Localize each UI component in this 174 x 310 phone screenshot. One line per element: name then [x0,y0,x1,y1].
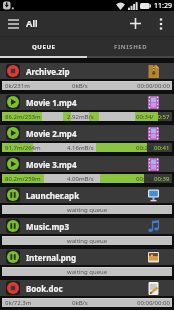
staticText: 86.2m/253m [5,113,41,121]
button[interactable]: Movie 1.mp4 [0,94,174,125]
staticText: FINISHED [114,43,148,51]
staticText: Launcher.apk [26,190,80,201]
button[interactable]: Music.mp3 [0,218,174,249]
staticText: Movie 2.mp4 [26,128,77,139]
button[interactable]: Movie 2.mp4 [0,125,174,156]
staticText: 00:20/ [136,175,154,183]
staticText: 4.00mB/s [67,175,94,183]
button[interactable] [148,11,174,36]
button[interactable] [0,11,26,36]
staticText: 0kB/s [72,82,88,90]
staticText: Music.mp3 [26,221,69,232]
staticText: 11:29 [154,1,172,11]
staticText: 00:34/ [136,113,154,121]
staticText: waiting queue [67,206,108,214]
staticText: 0k/231m [5,82,30,90]
staticText: 80.2m/259m [5,175,41,183]
staticText: QUEUE [32,43,56,51]
staticText: 4.16mB/s [67,144,94,152]
staticText: 2.92mB/s [67,113,94,121]
staticText: Internal.png [26,252,77,263]
staticText: 00:41 [154,144,170,152]
button[interactable]: Book.doc [0,280,174,310]
staticText: 00:57 [154,113,170,121]
staticText: 00:39 [154,175,170,183]
button[interactable] [122,11,148,36]
button[interactable]: Internal.png [0,249,174,280]
button[interactable]: Movie 3.mp4 [0,156,174,187]
staticText: Movie 3.mp4 [26,159,77,170]
button[interactable]: Launcher.apk [0,187,174,218]
staticText: Movie 1.mp4 [26,97,77,108]
staticText: 00:00/00:00 [137,299,170,307]
staticText: waiting queue [67,268,108,276]
button[interactable]: QUEUE [0,37,87,56]
staticText: All [26,17,38,30]
staticText: 00:00/00:00 [137,82,170,90]
staticText: 0kB/s [72,299,88,307]
staticText: Book.doc [26,283,63,294]
staticText: Archive.zip [26,66,70,77]
staticText: waiting queue [67,237,108,245]
staticText: 00:22/ [136,144,154,152]
staticText: 91.7m/264m [5,144,41,152]
button[interactable]: Archive.zip [0,63,174,94]
staticText: 0k/72.3m [5,299,32,307]
button[interactable]: FINISHED [87,37,174,56]
